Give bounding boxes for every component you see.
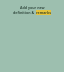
staticText: Add your new: [20, 5, 45, 10]
staticText: remarks: [36, 10, 51, 15]
staticText: definition &: [13, 10, 36, 15]
